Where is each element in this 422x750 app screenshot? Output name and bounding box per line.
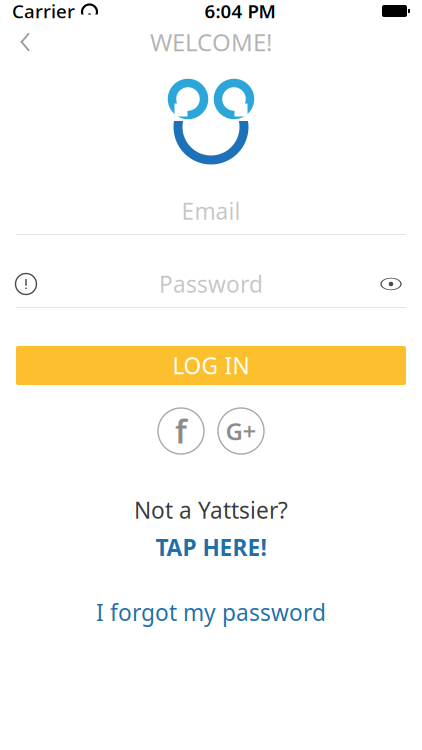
staticText: f	[175, 410, 187, 452]
staticText: I forgot my password	[96, 597, 326, 627]
button[interactable]: I forgot my password	[0, 591, 422, 633]
staticText: Password	[159, 269, 263, 299]
staticText: Email	[181, 196, 240, 226]
staticText: LOG IN	[172, 350, 249, 380]
button[interactable]: Back	[10, 24, 40, 60]
staticText: TAP HERE!	[155, 532, 266, 562]
button[interactable]: Show password	[374, 267, 408, 301]
staticText: WELCOME!	[150, 26, 272, 58]
staticText: 6:04 PM	[204, 0, 275, 23]
staticText: Carrier	[12, 0, 75, 23]
staticText: Not a Yattsier?	[134, 495, 288, 525]
button[interactable]: Sign in with Google	[217, 407, 265, 455]
button[interactable]: Sign in with Facebook	[157, 407, 205, 455]
button[interactable]: TAP HERE!	[145, 529, 276, 565]
button[interactable]: LOG IN	[16, 346, 406, 385]
staticText: G+	[225, 415, 256, 447]
